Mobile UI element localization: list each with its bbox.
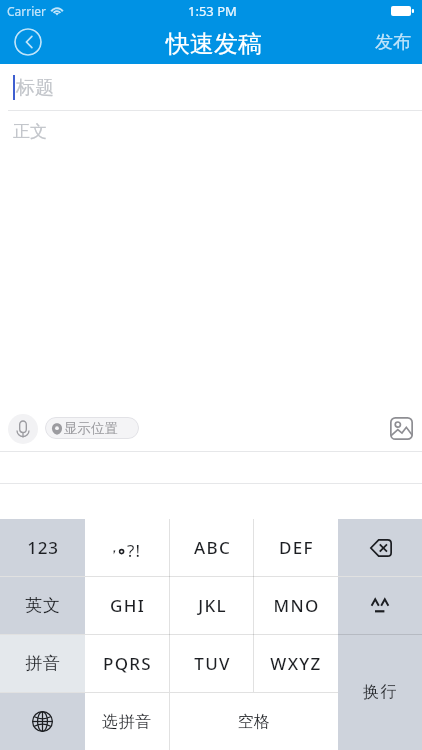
button[interactable]: MNO	[254, 577, 338, 634]
button[interactable]: Switch keyboard	[0, 693, 85, 750]
button[interactable]: ABC	[170, 519, 254, 576]
staticText: 换行	[363, 682, 398, 702]
staticText: JKL	[198, 594, 227, 617]
button[interactable]: 选拼音	[85, 693, 169, 750]
staticText: GHI	[110, 594, 145, 617]
staticText: 空格	[237, 712, 271, 732]
button[interactable]: Add image	[390, 417, 413, 440]
button[interactable]: 换行	[338, 634, 422, 750]
button[interactable]: TUV	[170, 635, 254, 692]
button[interactable]: 123	[0, 519, 85, 576]
button[interactable]: PQRS	[85, 635, 170, 692]
button[interactable]: Voice input	[8, 414, 38, 444]
button[interactable]: Delete	[338, 519, 422, 576]
staticText: 选拼音	[102, 712, 152, 732]
staticText: 1:53 PM	[188, 2, 237, 20]
button[interactable]: 标题	[0, 64, 422, 110]
button[interactable]: Back	[14, 28, 42, 56]
staticText: ABC	[194, 536, 231, 559]
staticText: 快速发稿	[166, 29, 262, 59]
staticText: Carrier	[7, 3, 47, 19]
button[interactable]: 显示位置	[45, 417, 139, 439]
staticText: PQRS	[103, 652, 152, 675]
staticText: 标题	[16, 76, 54, 100]
staticText: TUV	[194, 652, 231, 675]
staticText: MNO	[273, 594, 320, 617]
button[interactable]: WXYZ	[254, 635, 338, 692]
button[interactable]: 空格	[169, 693, 338, 750]
button[interactable]: Punctuation	[85, 519, 170, 576]
button[interactable]: DEF	[254, 519, 338, 576]
button[interactable]: 英文	[0, 577, 85, 634]
staticText: DEF	[279, 536, 314, 559]
staticText: 发布	[375, 31, 411, 54]
staticText: 显示位置	[64, 420, 118, 437]
button[interactable]: Emoji	[338, 577, 422, 634]
staticText: ?!	[127, 539, 142, 557]
staticText: 英文	[25, 595, 61, 616]
staticText: 拼音	[25, 653, 61, 674]
staticText: 正文	[13, 121, 47, 142]
staticText: 123	[27, 536, 59, 559]
button[interactable]: JKL	[170, 577, 254, 634]
staticText: WXYZ	[270, 652, 322, 675]
button[interactable]: GHI	[85, 577, 170, 634]
button[interactable]: 发布	[364, 26, 422, 59]
button[interactable]: 拼音	[0, 635, 85, 692]
